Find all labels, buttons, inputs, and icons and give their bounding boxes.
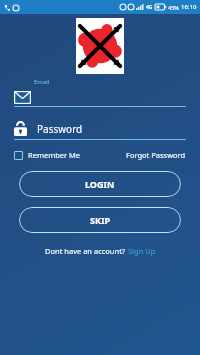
staticText: Email [34, 78, 50, 86]
button[interactable]: Sign Up [128, 246, 156, 256]
button[interactable]: Remember Me [14, 150, 81, 160]
button[interactable]: Forgot Password [126, 150, 186, 160]
staticText: Password [37, 122, 83, 136]
button[interactable]: SKIP [19, 207, 181, 233]
staticText: Forgot Password [126, 150, 186, 160]
staticText: 16:10 [181, 3, 197, 11]
staticText: Dont have an account? [45, 246, 128, 256]
staticText: 45% [168, 4, 179, 11]
staticText: Sign Up [128, 246, 156, 256]
staticText: 4G [146, 4, 153, 11]
staticText: Remember Me [28, 150, 81, 160]
button[interactable]: LOGIN [19, 171, 181, 197]
staticText: SKIP [90, 214, 111, 226]
staticText: LOGIN [85, 178, 115, 190]
